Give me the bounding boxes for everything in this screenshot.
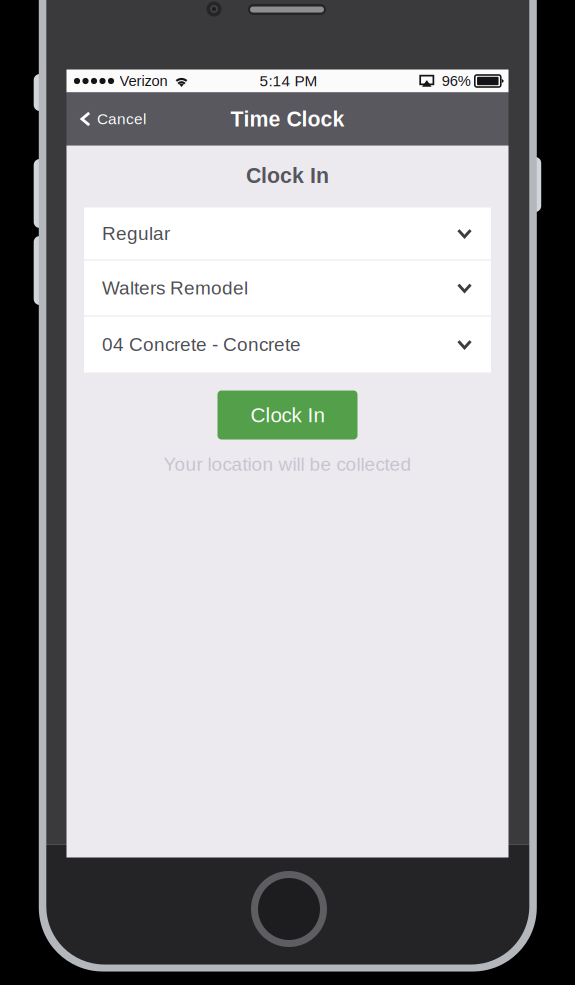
staticText: Time Clock <box>230 107 344 131</box>
staticText: Your location will be collected <box>163 453 411 475</box>
staticText: 96% <box>442 73 471 89</box>
staticText: Cancel <box>97 110 146 127</box>
button[interactable]: 04 Concrete - Concrete <box>84 316 491 372</box>
staticText: Walters Remodel <box>102 277 248 299</box>
button[interactable]: Regular <box>84 207 491 259</box>
staticText: Clock In <box>246 164 329 187</box>
staticText: Clock In <box>250 403 324 427</box>
button[interactable]: Walters Remodel <box>84 260 491 315</box>
staticText: 5:14 PM <box>259 72 317 89</box>
staticText: 04 Concrete - Concrete <box>102 334 301 355</box>
staticText: Regular <box>102 223 170 244</box>
button[interactable]: Clock In <box>217 390 357 439</box>
staticText: Verizon <box>119 73 167 89</box>
button[interactable]: Cancel <box>66 92 158 145</box>
